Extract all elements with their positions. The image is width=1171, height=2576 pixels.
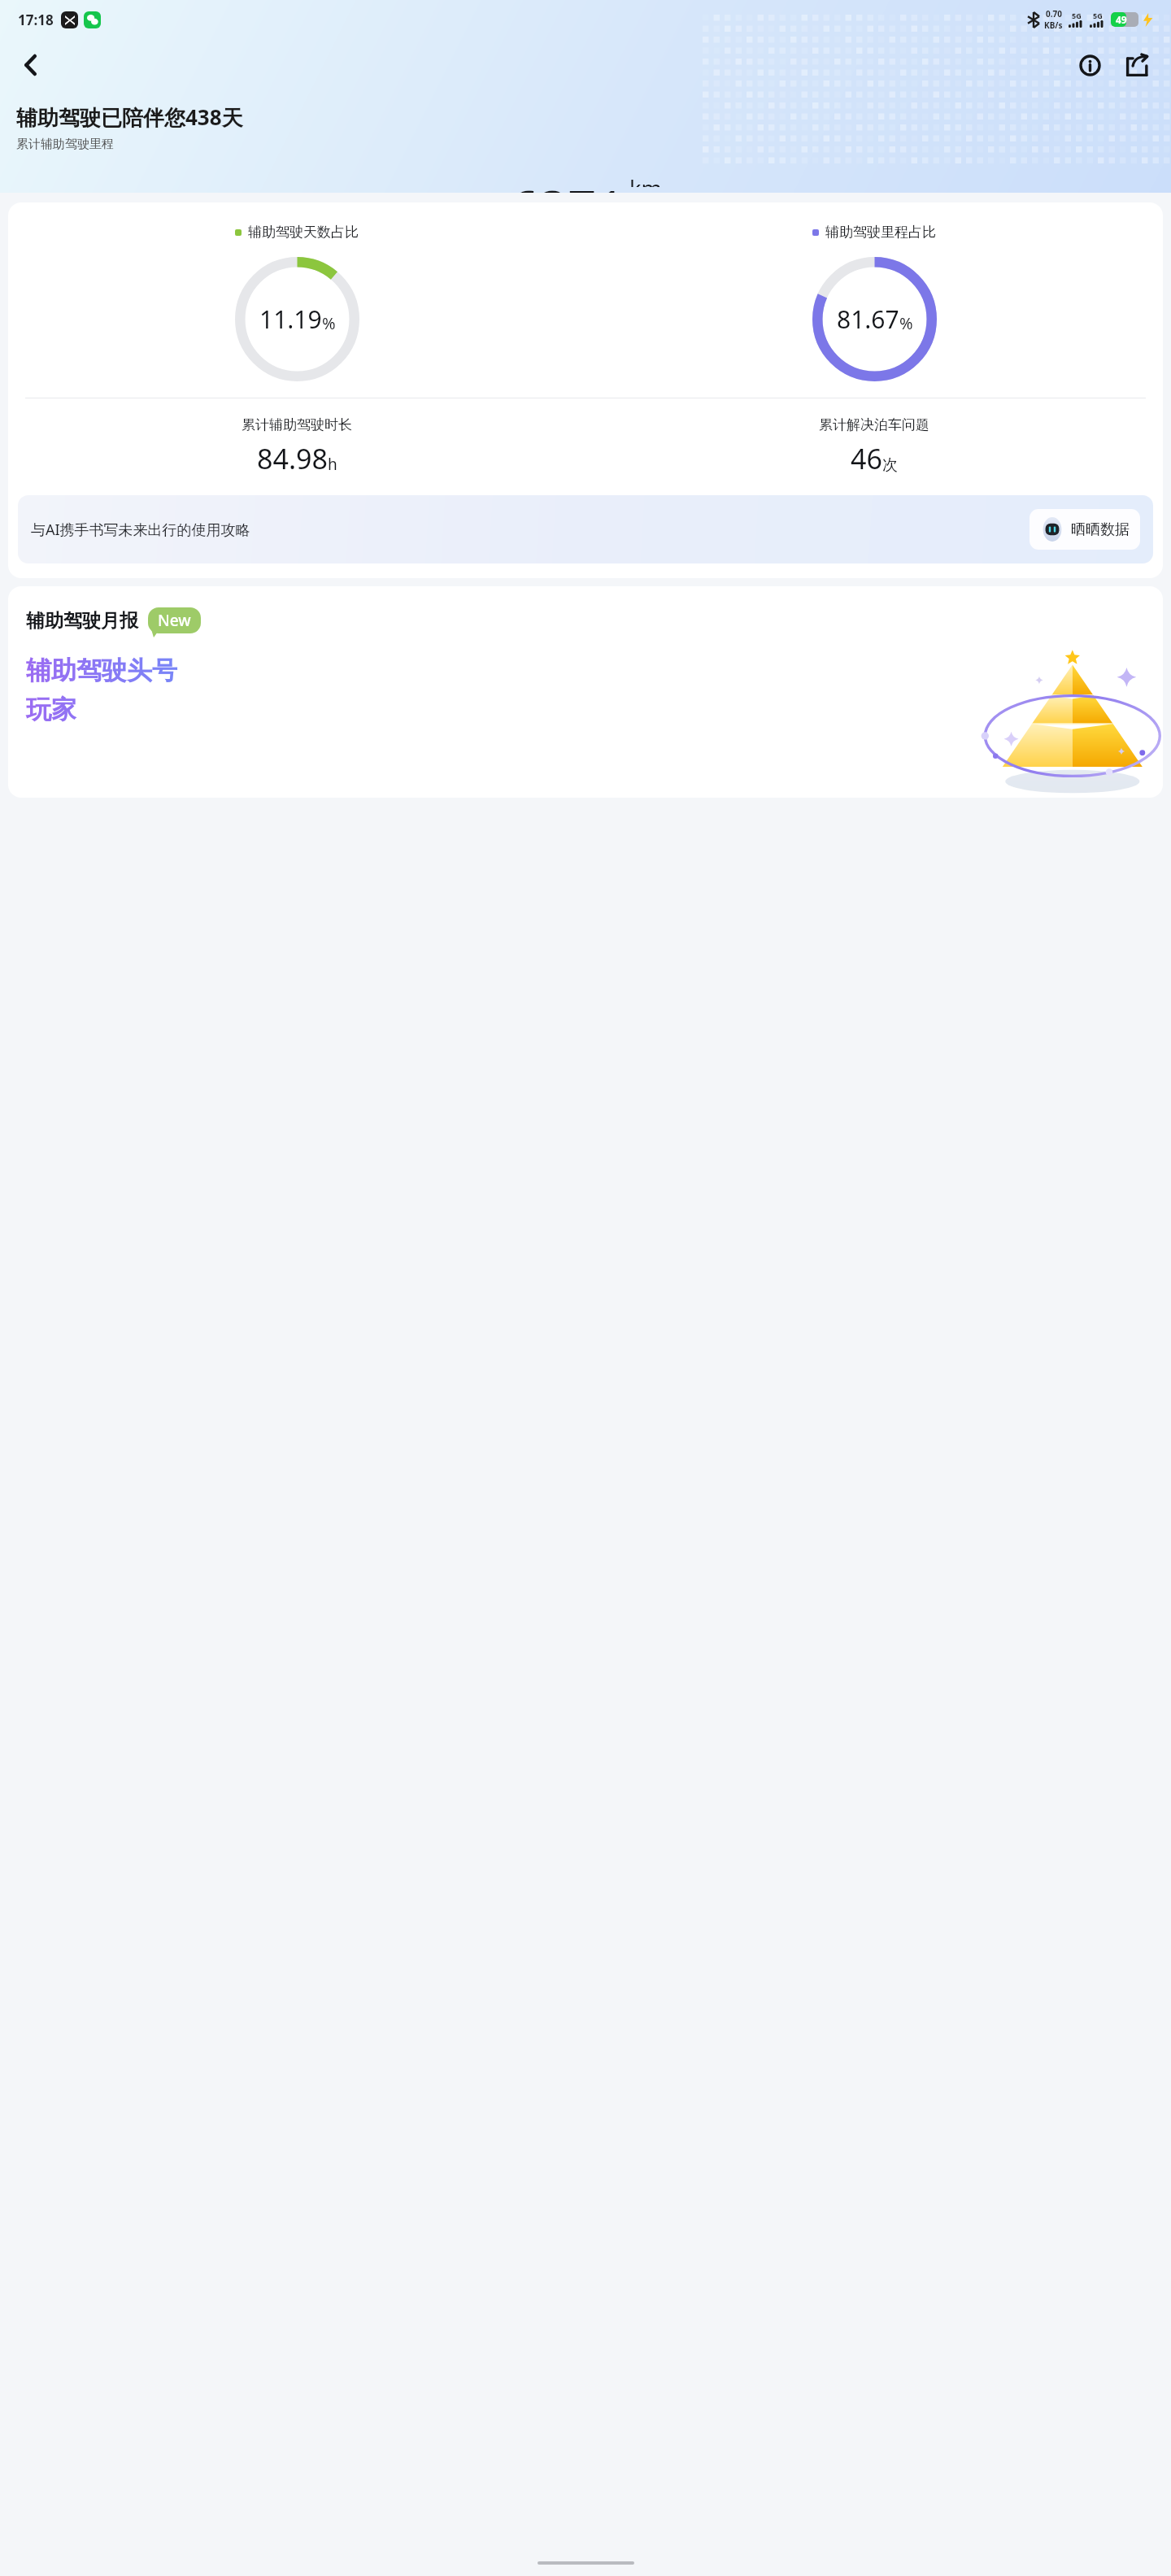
staticText: 49 — [1116, 13, 1127, 26]
staticText: 次 — [882, 455, 898, 475]
staticText: New — [158, 610, 191, 631]
staticText: 辅助驾驶天数占比 — [248, 224, 359, 241]
staticText: 6371 — [510, 173, 625, 193]
button[interactable]: Info — [1069, 44, 1111, 86]
staticText: 累计辅助驾驶时长 — [242, 416, 352, 433]
button[interactable]: Share — [1116, 44, 1158, 86]
staticText: 辅助驾驶头号 玩家 — [26, 655, 177, 725]
staticText: 5G — [1072, 11, 1082, 20]
staticText: 84.98 — [257, 440, 328, 477]
staticText: 晒晒数据 — [1071, 520, 1130, 539]
staticText: 累计辅助驾驶里程 — [16, 137, 114, 152]
button[interactable]: 辅助驾驶月报 — [8, 586, 1163, 798]
staticText: KB/s — [1044, 20, 1063, 31]
staticText: 11.19 — [259, 302, 322, 336]
staticText: h — [328, 454, 337, 475]
staticText: % — [899, 312, 913, 334]
button[interactable]: 晒晒数据 — [1030, 509, 1140, 550]
staticText: 累计解决泊车问题 — [819, 416, 929, 433]
staticText: 5G — [1093, 11, 1103, 20]
staticText: km — [629, 173, 662, 187]
staticText: 0.70 — [1046, 8, 1062, 20]
staticText: 辅助驾驶月报 — [26, 609, 138, 633]
staticText: 46 — [851, 440, 882, 477]
staticText: 17:18 — [18, 11, 54, 29]
staticText: 与AI携手书写未来出行的使用攻略 — [31, 520, 1020, 540]
staticText: 辅助驾驶里程占比 — [825, 224, 936, 241]
button[interactable]: Back — [10, 44, 52, 86]
staticText: % — [322, 312, 336, 334]
button[interactable]: 与AI携手书写未来出行的使用攻略 — [18, 495, 1153, 563]
staticText: 81.67 — [837, 302, 899, 336]
staticText: 辅助驾驶已陪伴您438天 — [16, 102, 243, 132]
